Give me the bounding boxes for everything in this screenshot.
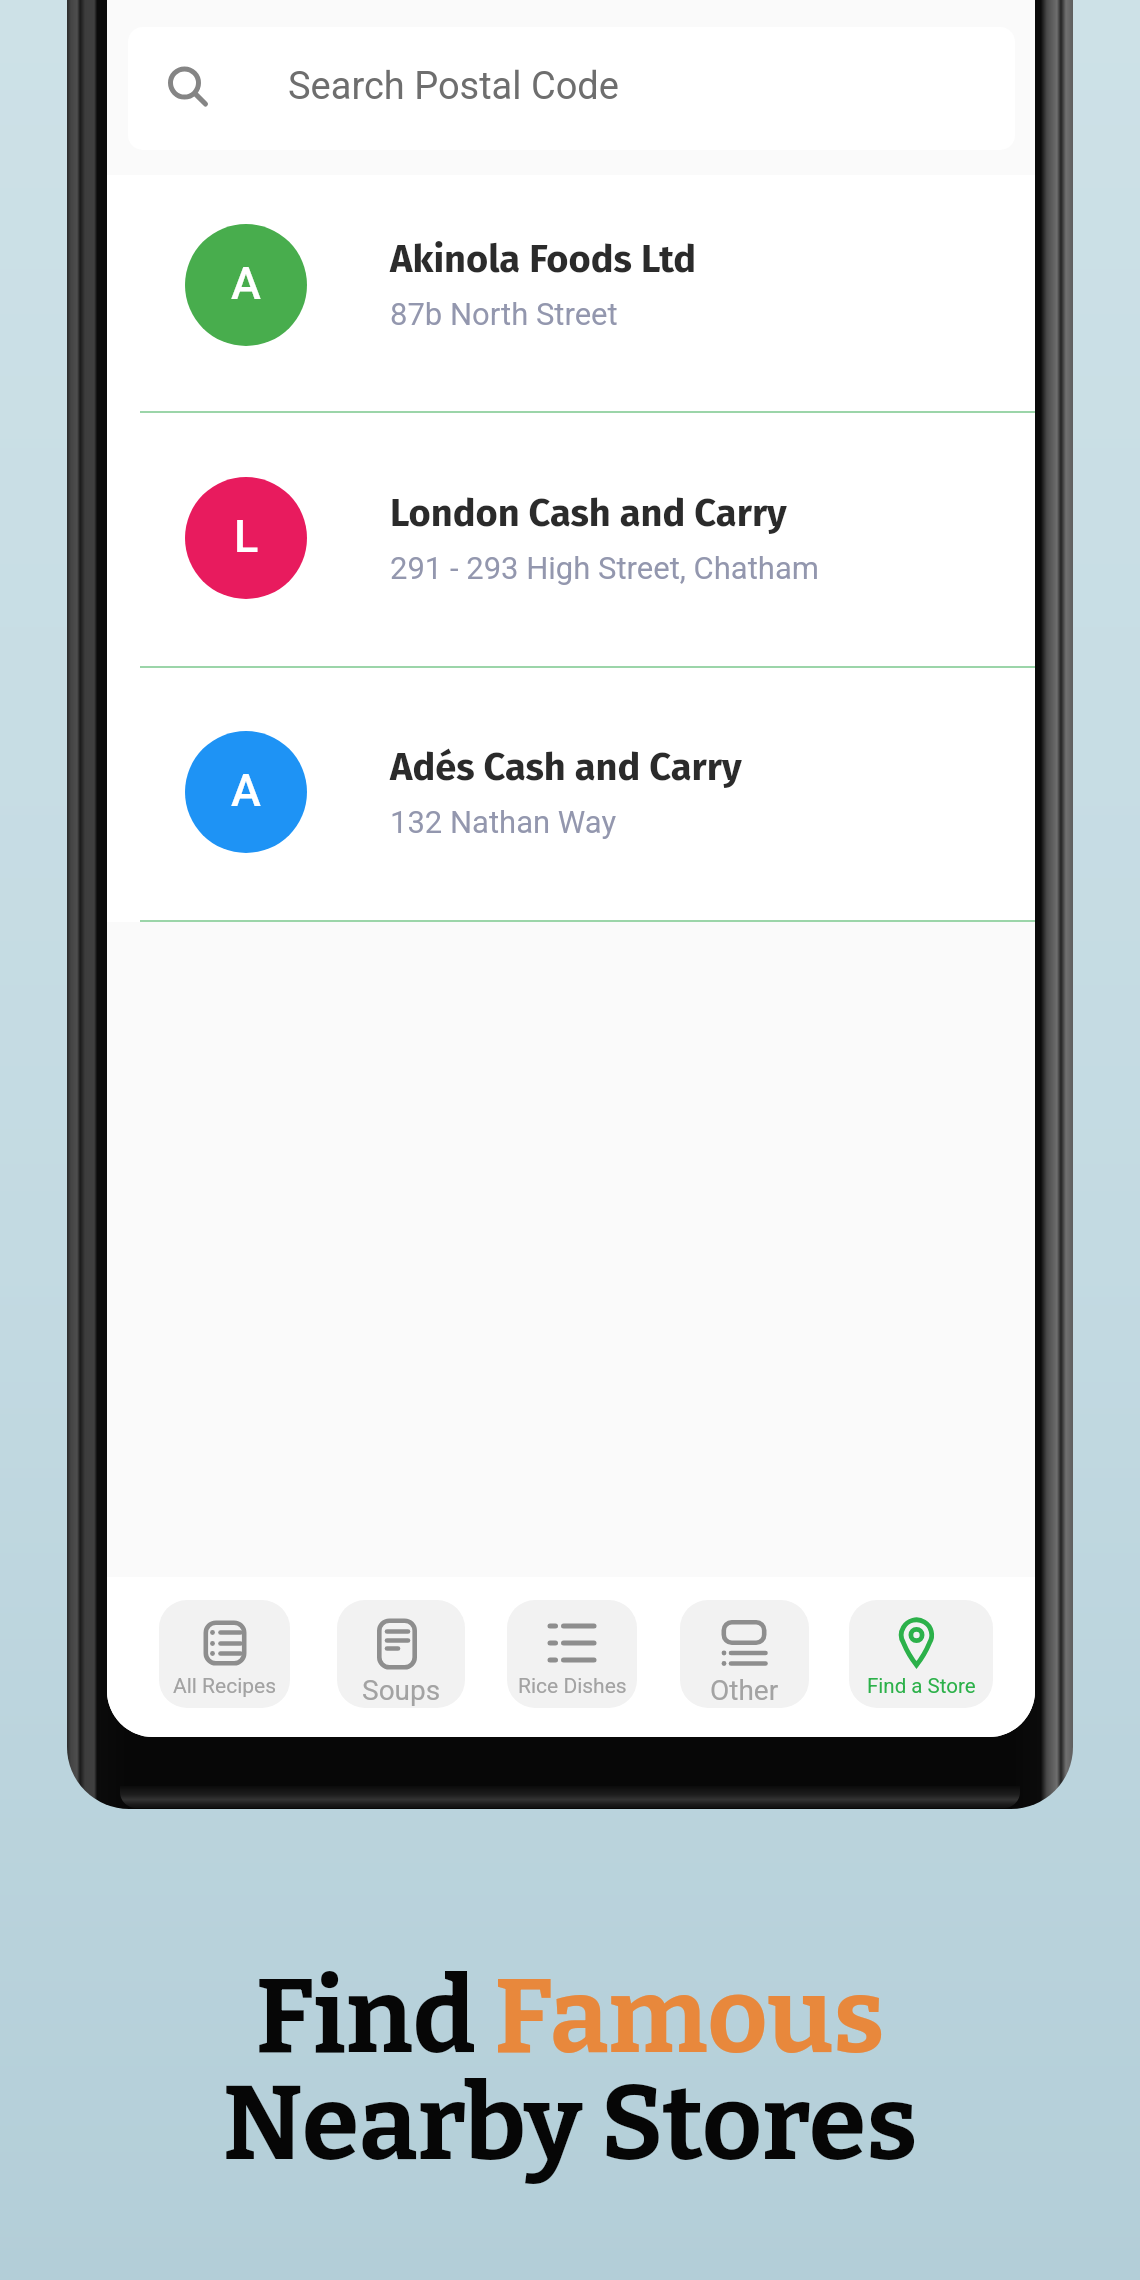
staticText: Rice Dishes xyxy=(518,1674,627,1699)
staticText: Other xyxy=(710,1674,779,1707)
other: Find a Store xyxy=(895,1617,947,1669)
staticText: A xyxy=(231,764,261,817)
button[interactable]: Other xyxy=(680,1600,809,1708)
staticText: 291 - 293 High Street, Chatham xyxy=(390,550,819,586)
other: Rice Dishes xyxy=(546,1617,598,1669)
other: Other xyxy=(719,1617,771,1669)
staticText: London Cash and Carry xyxy=(390,490,787,536)
button[interactable]: Find a Store xyxy=(849,1600,993,1708)
staticText: Soups xyxy=(362,1674,441,1707)
other: Soups xyxy=(375,1617,427,1669)
staticText: 132 Nathan Way xyxy=(390,804,617,840)
button[interactable]: Rice Dishes xyxy=(507,1600,637,1708)
staticText: Search Postal Code xyxy=(288,64,619,109)
button[interactable]: Search Postal Code xyxy=(128,27,1015,150)
other: All Recipes xyxy=(199,1617,251,1669)
staticText: Find a Store xyxy=(867,1674,976,1698)
staticText: L xyxy=(234,510,259,563)
button[interactable]: All Recipes xyxy=(159,1600,290,1708)
staticText: 87b North Street xyxy=(390,296,618,332)
button[interactable]: Soups xyxy=(337,1600,465,1708)
staticText: Akinola Foods Ltd xyxy=(390,236,697,282)
staticText: Adés Cash and Carry xyxy=(390,744,742,790)
button[interactable]: A xyxy=(107,175,1035,412)
staticText: All Recipes xyxy=(173,1674,277,1699)
button[interactable]: L xyxy=(107,413,1035,667)
staticText: Find Famous Nearby Stores xyxy=(0,1955,1140,2186)
button[interactable]: A xyxy=(107,668,1035,921)
staticText: A xyxy=(231,257,261,310)
